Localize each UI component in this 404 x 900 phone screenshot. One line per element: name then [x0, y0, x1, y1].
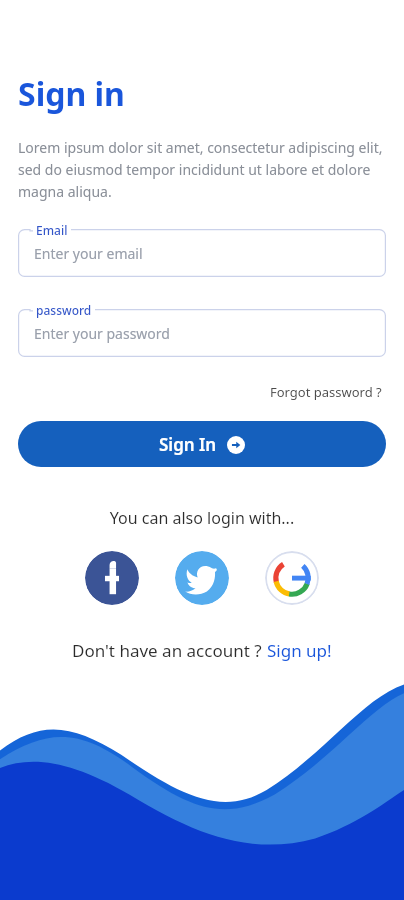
staticText: Sign In: [159, 433, 217, 456]
staticText: Lorem ipsum dolor sit amet, consectetur …: [18, 138, 386, 201]
button[interactable]: Sign in with Facebook: [85, 551, 139, 605]
staticText: Email: [36, 222, 68, 238]
staticText: Enter your password: [34, 324, 170, 343]
button[interactable]: Sign In: [18, 421, 386, 467]
staticText: Sign up!: [267, 639, 332, 662]
button[interactable]: Enter your email: [18, 229, 386, 277]
button[interactable]: Sign in with Google: [265, 551, 319, 605]
staticText: Don't have an account ?: [72, 639, 267, 662]
button[interactable]: Sign in with Twitter: [175, 551, 229, 605]
staticText: password: [36, 302, 92, 318]
button[interactable]: Don't have an account ?: [68, 635, 336, 666]
staticText: Enter your email: [34, 244, 143, 263]
staticText: You can also login with...: [18, 507, 386, 529]
staticText: Sign in: [18, 72, 125, 116]
button[interactable]: Forgot password ?: [266, 379, 386, 405]
button[interactable]: Enter your password: [18, 309, 386, 357]
